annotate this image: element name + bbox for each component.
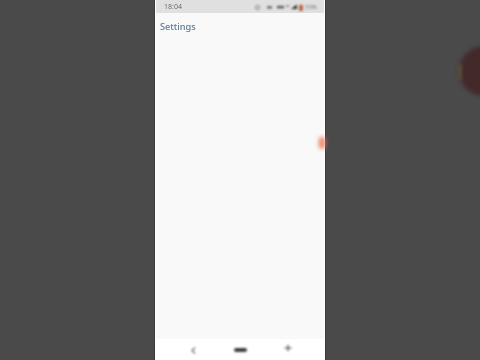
button[interactable]: Home bbox=[225, 343, 255, 357]
button[interactable]: Recents bbox=[280, 340, 296, 356]
button[interactable]: Back bbox=[185, 342, 201, 358]
staticText: Settings bbox=[160, 20, 196, 33]
staticText: 33% bbox=[305, 3, 317, 11]
staticText: 18:04 bbox=[164, 2, 182, 12]
